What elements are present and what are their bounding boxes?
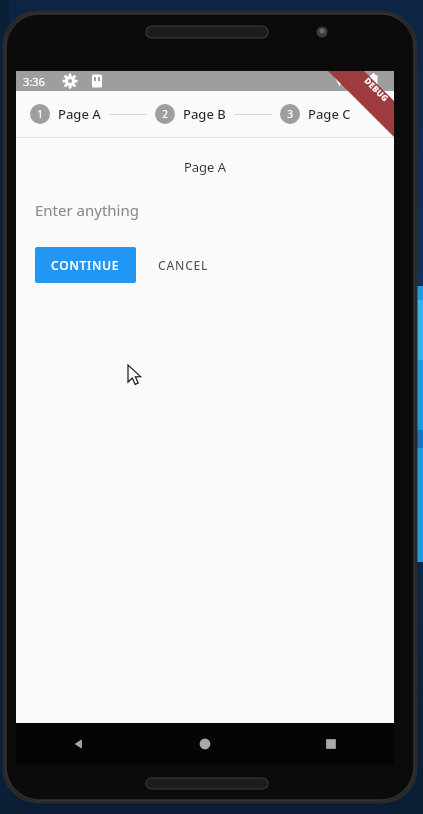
staticText: Page A <box>16 158 394 176</box>
button[interactable]: 2 <box>155 104 226 124</box>
staticText: DEBUG <box>362 75 391 104</box>
button[interactable]: 1 <box>30 104 101 124</box>
button[interactable]: Recent apps <box>268 723 394 765</box>
staticText: Page B <box>183 105 226 123</box>
button[interactable]: CANCEL <box>144 247 223 283</box>
button[interactable]: Back <box>16 723 142 765</box>
button[interactable]: Enter anything <box>16 193 394 227</box>
staticText: Page C <box>308 105 351 123</box>
staticText: 2 <box>162 107 168 121</box>
staticText: CANCEL <box>158 257 209 273</box>
button[interactable]: Home <box>142 723 268 765</box>
staticText: CONTINUE <box>51 257 120 273</box>
button[interactable]: 3 <box>280 104 351 124</box>
staticText: 1 <box>37 107 43 121</box>
button[interactable]: CONTINUE <box>35 247 136 283</box>
staticText: Enter anything <box>35 200 139 220</box>
staticText: 3 <box>287 107 293 121</box>
staticText: Page A <box>58 105 101 123</box>
staticText: 3:36 <box>23 74 45 89</box>
